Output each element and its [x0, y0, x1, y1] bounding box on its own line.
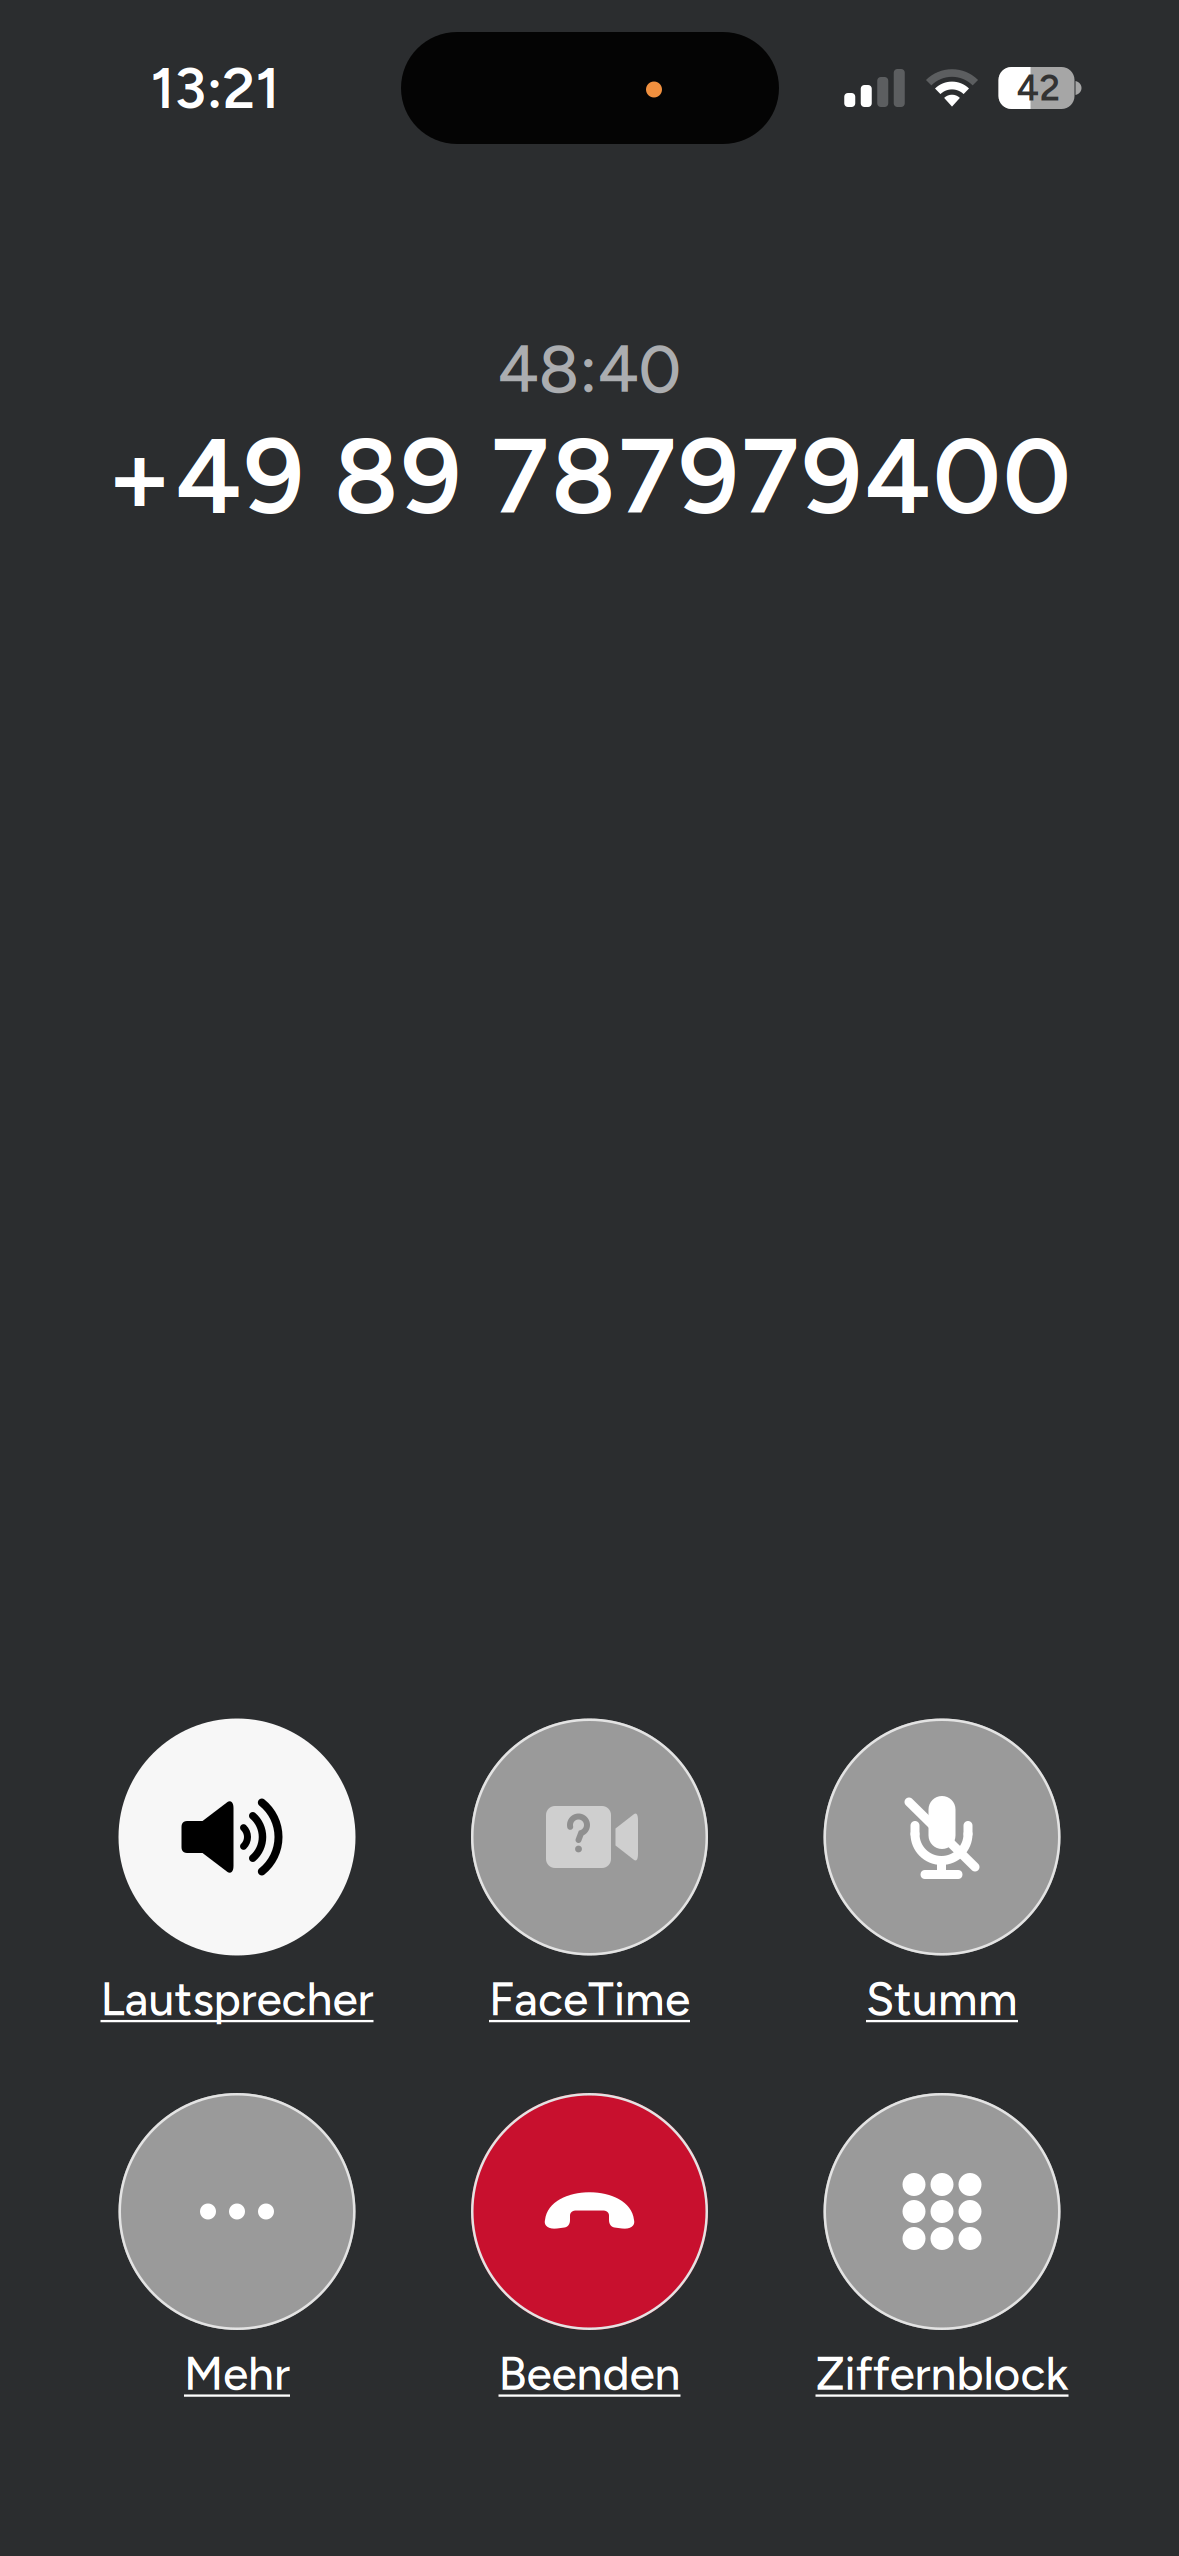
button[interactable]: FaceTime — [413, 1718, 765, 2033]
button[interactable]: Lautsprecher — [61, 1718, 413, 2033]
button[interactable]: Stumm — [766, 1718, 1118, 2033]
staticText: 13:21 — [150, 54, 279, 122]
button[interactable]: Ziffernblock — [766, 2093, 1118, 2408]
staticText: Beenden — [498, 2346, 680, 2401]
staticText: Stumm — [866, 1971, 1018, 2027]
staticText: +49 89 787979400 — [106, 413, 1071, 539]
staticText: Lautsprecher — [100, 1971, 373, 2027]
staticText: 42 — [1016, 66, 1060, 110]
button[interactable]: Beenden — [413, 2093, 765, 2408]
staticText: 48:40 — [497, 329, 681, 409]
staticText: FaceTime — [489, 1971, 690, 2027]
staticText: Mehr — [184, 2346, 290, 2401]
button[interactable]: Mehr — [61, 2093, 413, 2408]
staticText: Ziffernblock — [815, 2346, 1068, 2401]
